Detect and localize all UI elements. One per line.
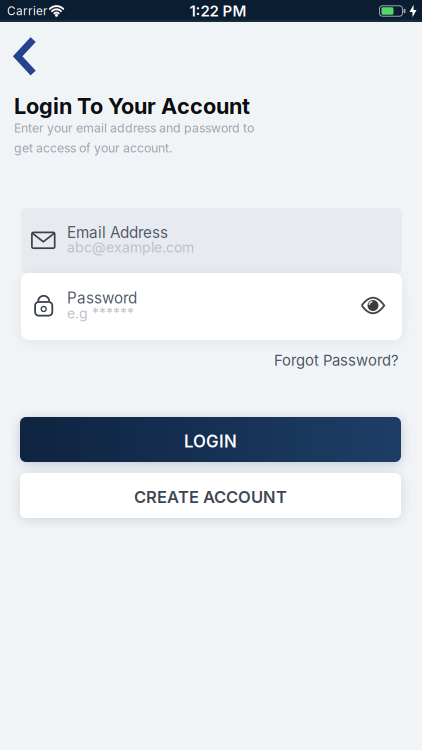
staticText: Enter your email address and password to (14, 121, 254, 135)
staticText: Carrier (7, 4, 47, 18)
button[interactable] (361, 297, 385, 313)
button[interactable] (8, 29, 43, 83)
staticText: abc@example.com (67, 239, 194, 256)
staticText: LOGIN (184, 431, 237, 451)
staticText: Login To Your Account (14, 93, 250, 119)
staticText: Forgot Password? (274, 351, 399, 369)
staticText: e.g ****** (67, 305, 134, 322)
staticText: 1:22 PM (189, 2, 246, 20)
button[interactable]: Forgot Password? (199, 351, 399, 369)
staticText: Password (67, 289, 137, 307)
staticText: get access of your account. (14, 141, 173, 155)
button[interactable]: CREATE ACCOUNT (20, 473, 401, 518)
staticText: CREATE ACCOUNT (134, 487, 287, 507)
staticText: Email Address (67, 223, 168, 242)
button[interactable]: LOGIN (20, 417, 401, 462)
